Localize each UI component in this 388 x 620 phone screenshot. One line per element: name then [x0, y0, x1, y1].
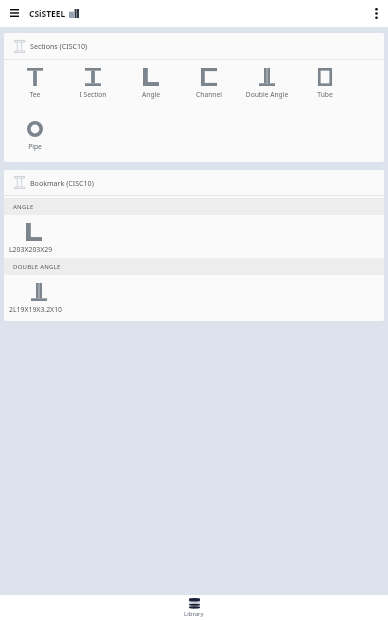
- button[interactable]: Sections (CISC10): [4, 33, 384, 59]
- staticText: L203X203X29: [9, 245, 53, 254]
- button[interactable]: Pipe: [6, 112, 64, 162]
- staticText: Channel: [180, 90, 238, 99]
- button[interactable]: 2L19X19X3.2X10: [4, 275, 384, 321]
- button[interactable]: More options: [364, 0, 388, 27]
- staticText: Sections (CISC10): [30, 41, 88, 51]
- button[interactable]: I Section: [64, 60, 122, 112]
- button[interactable]: Double Angle: [238, 60, 296, 112]
- button[interactable]: Angle: [122, 60, 180, 112]
- staticText: Pipe: [6, 142, 64, 151]
- staticText: I Section: [64, 90, 122, 99]
- staticText: Bookmark (CISC10): [30, 178, 94, 188]
- staticText: Tee: [6, 90, 64, 99]
- button[interactable]: Channel: [180, 60, 238, 112]
- staticText: Angle: [122, 90, 180, 99]
- staticText: CSiSTEEL: [29, 8, 66, 19]
- staticText: Double Angle: [238, 90, 296, 99]
- button[interactable]: Tube: [296, 60, 354, 112]
- button[interactable]: Tee: [6, 60, 64, 112]
- staticText: 2L19X19X3.2X10: [9, 305, 63, 314]
- staticText: DOUBLE ANGLE: [13, 263, 61, 271]
- button[interactable]: Bookmark (CISC10): [4, 170, 384, 195]
- button[interactable]: Library: [0, 595, 388, 620]
- staticText: ANGLE: [13, 203, 34, 211]
- button[interactable]: L203X203X29: [4, 215, 384, 258]
- button[interactable]: Open navigation menu: [0, 0, 29, 27]
- staticText: Library: [184, 610, 204, 618]
- staticText: Tube: [296, 90, 354, 99]
